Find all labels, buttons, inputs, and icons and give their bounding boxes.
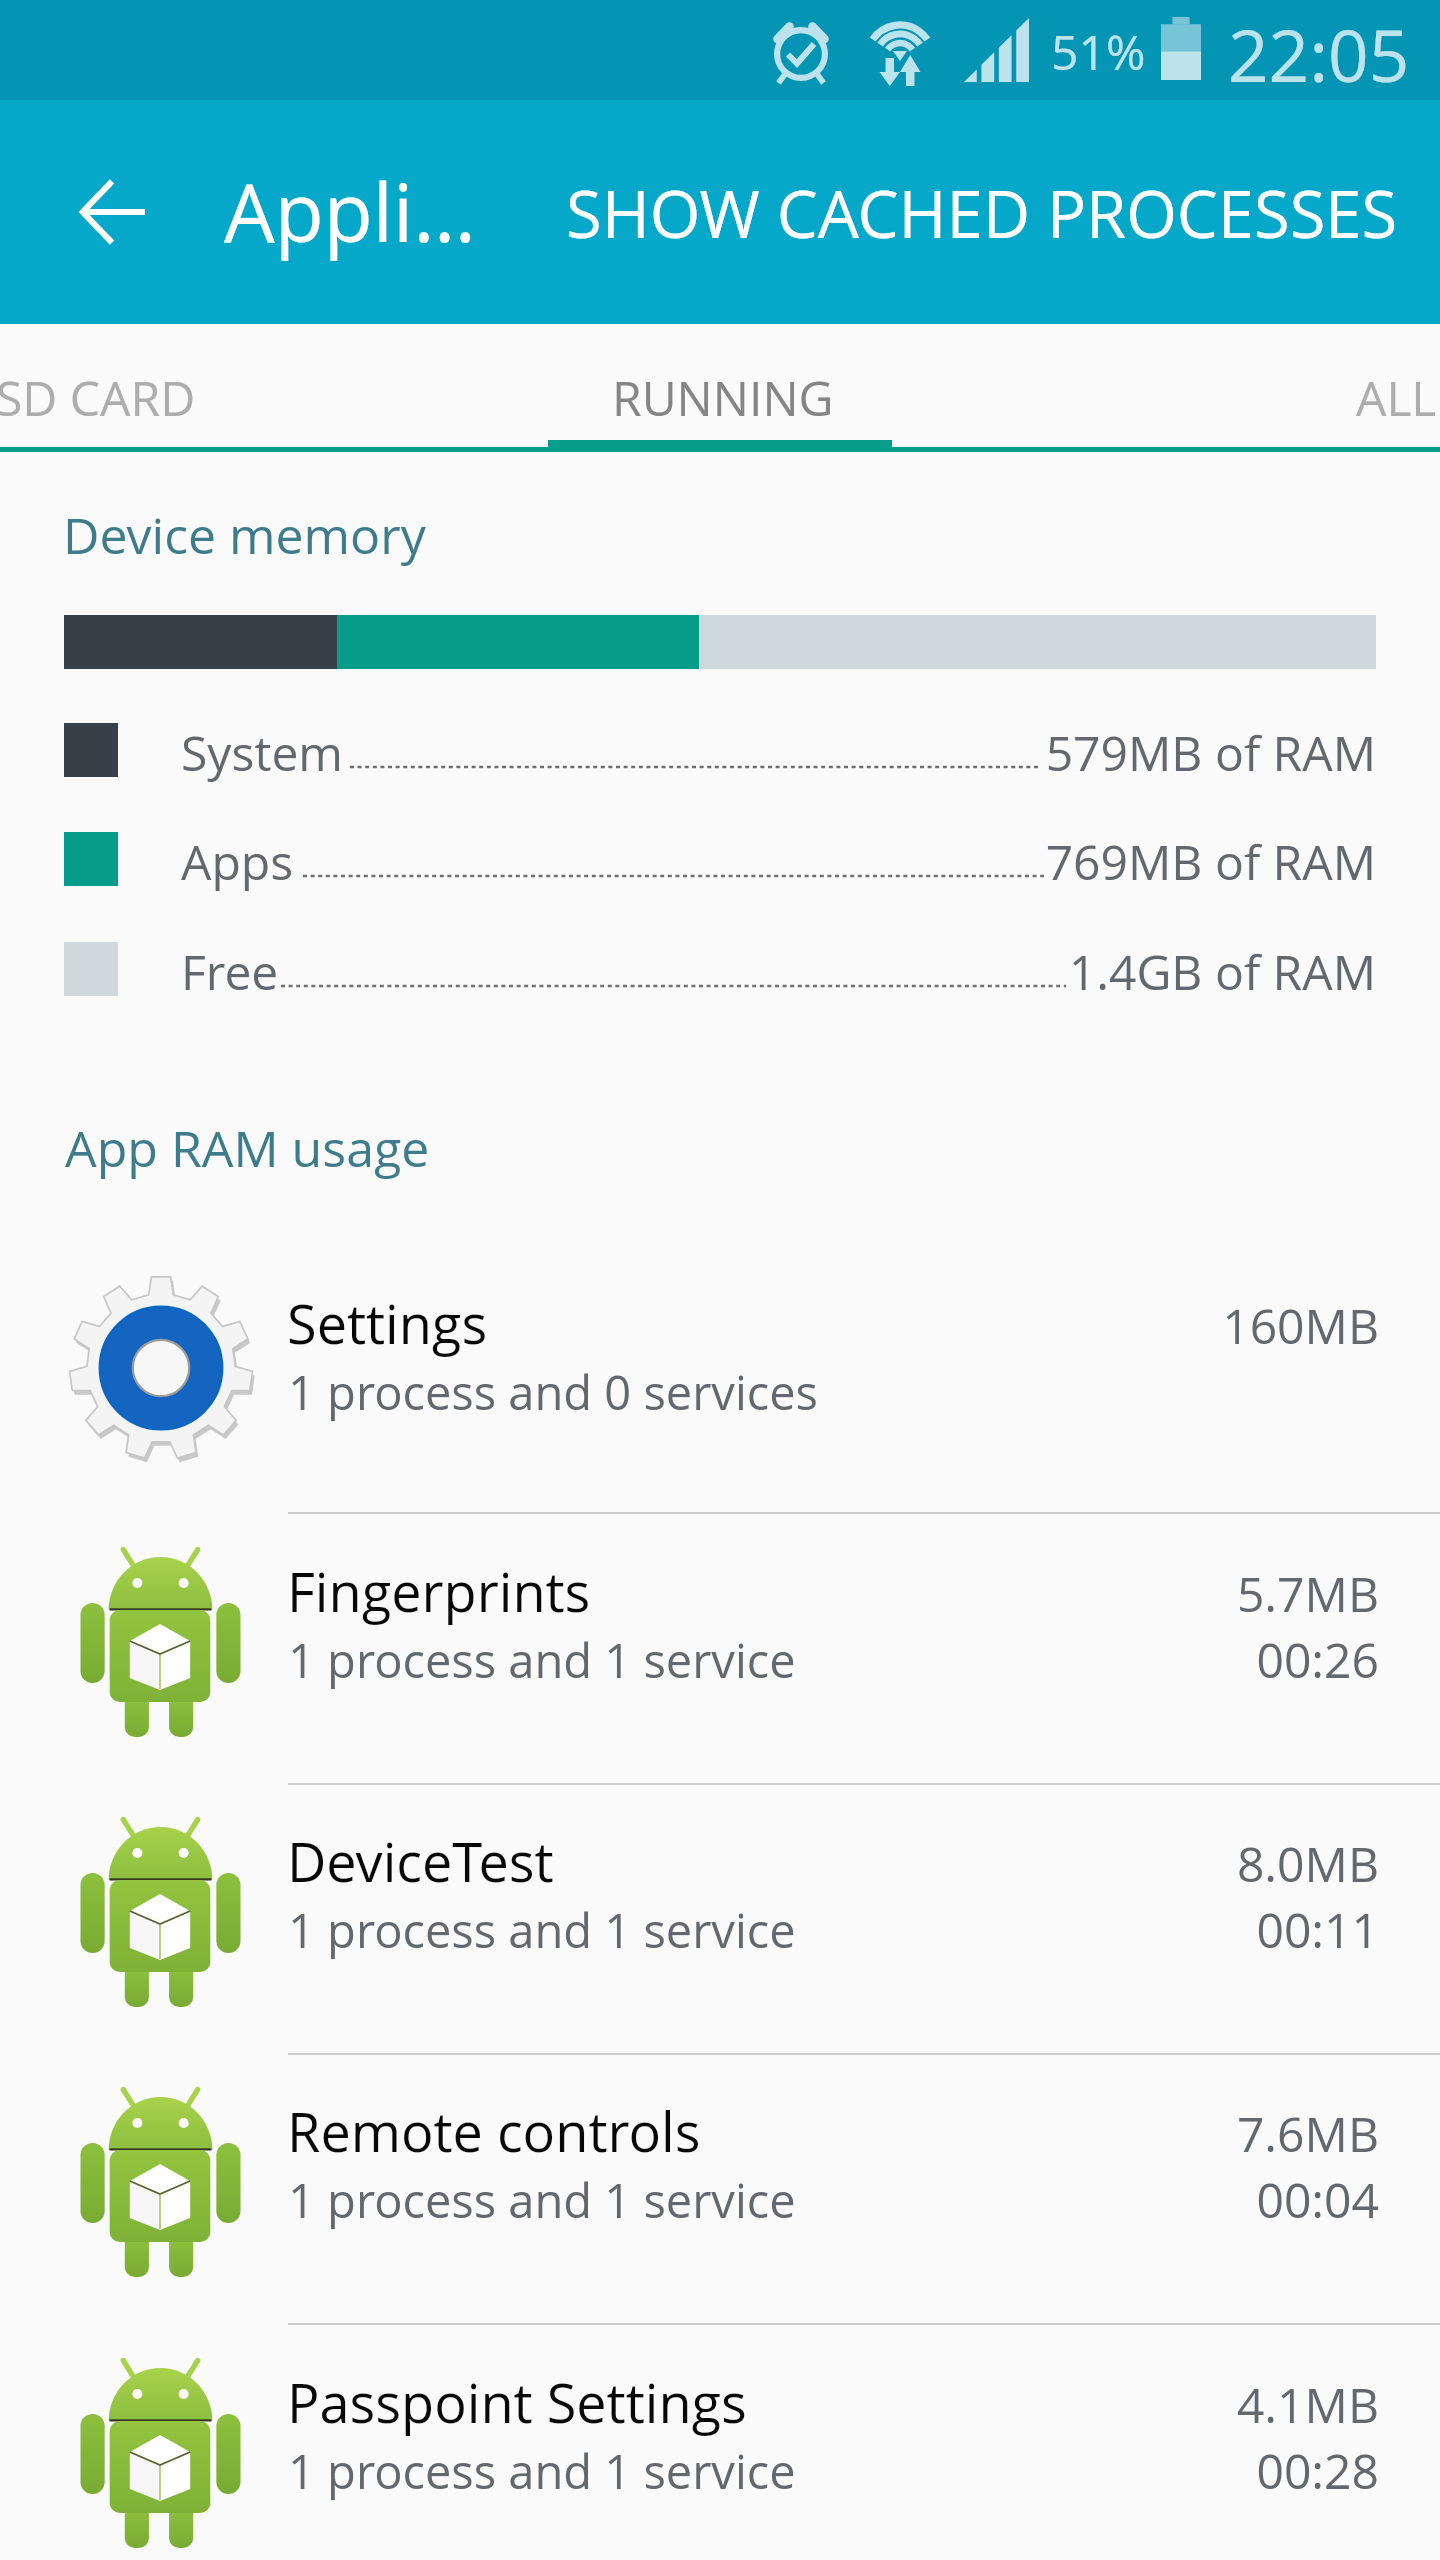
staticText: Passpoint Settings — [287, 2365, 747, 2439]
button[interactable]: RUNNING — [548, 322, 892, 448]
staticText: Appli… — [224, 156, 476, 265]
staticText: DeviceTest — [287, 1824, 554, 1898]
button[interactable] — [0, 1512, 1440, 1783]
staticText: Device memory — [63, 501, 426, 569]
staticText: ALL — [1356, 365, 1437, 430]
staticText: Remote controls — [287, 2094, 701, 2168]
staticText: 1 process and 1 service — [288, 1898, 796, 1962]
staticText: App RAM usage — [65, 1114, 430, 1182]
staticText: Apps — [181, 829, 294, 894]
staticText: 22:05 — [1228, 6, 1410, 103]
staticText: 00:11 — [0, 1897, 1379, 1962]
button[interactable] — [0, 1241, 1440, 1512]
button[interactable]: SD CARD — [0, 322, 204, 448]
staticText: 5.7MB — [0, 1561, 1379, 1626]
staticText: 1.4GB of RAM — [0, 939, 1376, 1004]
staticText: Settings — [287, 1286, 488, 1360]
staticText: Free — [181, 939, 279, 1004]
button[interactable]: Appli… — [224, 140, 476, 292]
staticText: 00:26 — [0, 1627, 1379, 1692]
staticText: 1 process and 0 services — [288, 1360, 818, 1424]
staticText: 00:28 — [0, 2438, 1379, 2503]
staticText: SD CARD — [0, 365, 196, 430]
button[interactable] — [0, 2052, 1440, 2323]
staticText: 1 process and 1 service — [288, 2439, 796, 2503]
staticText: 51% — [1051, 19, 1146, 84]
staticText: 160MB — [0, 1293, 1379, 1358]
staticText: 579MB of RAM — [0, 720, 1376, 785]
button[interactable]: Navigate up — [32, 132, 192, 292]
staticText: 4.1MB — [0, 2372, 1379, 2437]
staticText: 769MB of RAM — [0, 829, 1376, 894]
staticText: Fingerprints — [287, 1554, 591, 1628]
staticText: SHOW CACHED PROCESSES — [566, 169, 1398, 258]
button[interactable] — [0, 1782, 1440, 2053]
staticText: 1 process and 1 service — [288, 2168, 796, 2232]
staticText: 1 process and 1 service — [288, 1628, 796, 1692]
staticText: 00:04 — [0, 2167, 1379, 2232]
button[interactable] — [0, 2323, 1440, 2560]
staticText: 7.6MB — [0, 2101, 1379, 2166]
button[interactable]: SHOW CACHED PROCESSES — [566, 140, 1398, 292]
staticText: 8.0MB — [0, 1831, 1379, 1896]
staticText: RUNNING — [612, 365, 834, 430]
staticText: System — [181, 720, 343, 785]
button[interactable]: ALL — [1236, 322, 1440, 448]
